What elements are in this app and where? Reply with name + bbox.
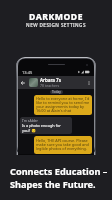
staticText: Arbara 7s [40,77,61,83]
staticText: NEW DESIGN SETTINGS [26,22,86,28]
staticText: Hello, THE API course. Please make sure … [36,138,90,152]
staticText: Is a photo enough for you? 🙂 [22,123,70,133]
staticText: Shapes the Future. [10,178,96,191]
button[interactable]: More options [87,81,91,85]
staticText: Connects Education – [10,165,108,178]
staticText: 78 teachers [40,83,60,88]
staticText: I'm sAlder [22,118,38,123]
staticText: Hello to everyone at home, I'd like to r… [36,96,90,114]
staticText: 13:45 [22,70,33,75]
button[interactable]: Back [20,80,26,86]
staticText: DARKMODE [29,11,83,23]
staticText: Today [52,90,61,94]
